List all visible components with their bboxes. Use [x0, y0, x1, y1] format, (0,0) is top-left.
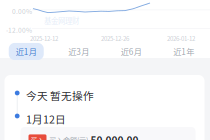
button[interactable]: 近3月: [52, 43, 105, 60]
staticText: 近3月: [68, 45, 89, 57]
staticText: 1月12日: [26, 111, 66, 127]
button[interactable]: 近1月: [0, 43, 52, 60]
staticText: 近6月: [121, 45, 142, 57]
staticText: 2025-12-26: [101, 34, 129, 43]
staticText: 50,000.00: [90, 132, 138, 140]
staticText: 基金网理财: [44, 15, 79, 26]
button[interactable]: 近6月: [105, 43, 157, 60]
staticText: 近1年: [173, 45, 194, 57]
staticText: 0.00%: [12, 6, 32, 16]
staticText: -12.00%: [6, 25, 32, 35]
button[interactable]: 近1年: [157, 43, 210, 60]
staticText: 2025-12-12: [30, 34, 58, 43]
staticText: 2026-01-12: [167, 34, 195, 43]
staticText: 买入金额(元): [49, 135, 88, 140]
staticText: 今天 暂无操作: [26, 88, 94, 103]
staticText: 近1月: [16, 45, 37, 57]
staticText: 买入: [30, 135, 44, 140]
